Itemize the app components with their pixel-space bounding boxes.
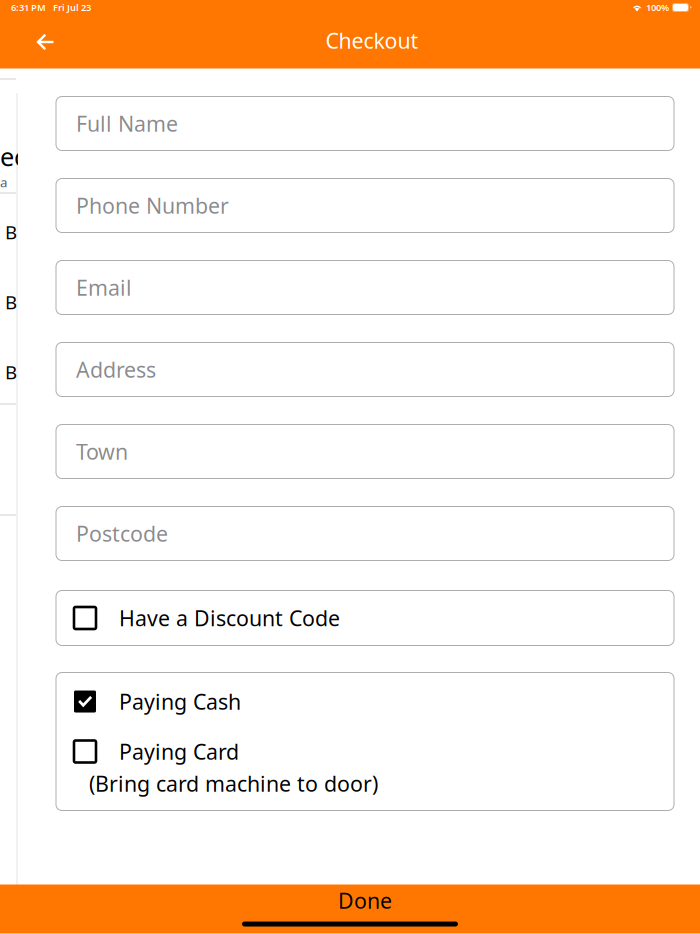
staticText: B [5, 219, 17, 244]
button[interactable]: Done [56, 889, 674, 911]
button[interactable]: Paying Card [56, 734, 674, 798]
staticText: B [5, 289, 17, 314]
staticText: a [0, 173, 7, 191]
staticText: (Bring card machine to door) [89, 769, 378, 798]
staticText: Fri Jul 23 [53, 1, 91, 14]
staticText: Town [76, 437, 128, 466]
staticText: Paying Cash [119, 687, 241, 716]
staticText: Full Name [76, 109, 178, 138]
staticText: B [5, 359, 17, 384]
staticText: Paying Card [119, 737, 239, 766]
staticText: Have a Discount Code [119, 604, 340, 632]
button[interactable]: Have a Discount Code [56, 590, 674, 645]
staticText: 100% [646, 1, 669, 14]
staticText: Email [76, 273, 132, 302]
staticText: Phone Number [76, 191, 229, 220]
staticText: Postcode [76, 519, 168, 548]
button[interactable]: Paying Cash [56, 684, 674, 718]
staticText: Address [76, 355, 156, 384]
staticText: Checkout [325, 26, 418, 55]
staticText: ec [0, 139, 26, 173]
staticText: 6:31 PM [11, 1, 46, 14]
staticText: Done [338, 886, 392, 915]
button[interactable]: Back [0, 17, 90, 63]
